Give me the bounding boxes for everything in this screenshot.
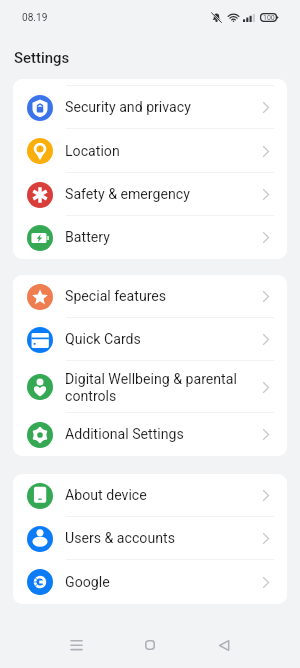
staticText: 100 [263,14,275,22]
staticText: 08.19 [22,12,48,24]
button[interactable]: Location [13,129,287,173]
button[interactable]: Safety & emergency [13,173,287,216]
staticText: Location [65,143,120,160]
staticText: Safety & emergency [65,186,190,203]
staticText: Special features [65,288,167,305]
staticText: Users & accounts [65,530,175,547]
staticText: About device [65,487,147,504]
button[interactable]: Additional Settings [13,413,287,456]
staticText: Settings [14,49,70,66]
staticText: Digital Wellbeing & parental controls [65,371,253,404]
staticText: Security and privacy [65,99,191,116]
button[interactable]: Quick Cards [13,318,287,361]
button[interactable]: Home [113,627,187,663]
button[interactable]: Battery [13,216,287,259]
staticText: Additional Settings [65,426,184,443]
staticText: Battery [65,229,110,246]
button[interactable]: Users & accounts [13,517,287,560]
button[interactable]: About device [13,474,287,517]
button[interactable]: Security and privacy [13,86,287,129]
staticText: Quick Cards [65,331,141,348]
button[interactable]: Special features [13,275,287,318]
button[interactable]: Back [187,627,261,663]
button[interactable]: Google [13,560,287,604]
button[interactable]: Recent apps [39,627,113,663]
button[interactable]: Digital Wellbeing & parental controls [13,361,287,413]
staticText: Google [65,574,110,591]
